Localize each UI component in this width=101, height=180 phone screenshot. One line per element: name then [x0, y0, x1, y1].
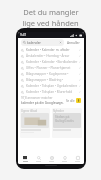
staticText: lige ved hånden	[22, 18, 79, 28]
staticText: kalender på din Googlesøgn.	[21, 101, 64, 105]
button[interactable]: Ugens tilbud	[20, 108, 50, 138]
button[interactable]: Kalender • Kalender m. aftaler	[18, 47, 84, 53]
button[interactable]: Årskalender • Hverdag • Årsur	[18, 53, 84, 59]
button[interactable]: Bilagsmapper • Kuglepenne • Ugekalender	[18, 71, 84, 77]
button[interactable]: 97,8 annoncer matcher	[18, 95, 84, 106]
button[interactable]: Kalender • Tidsplan • Murerhold	[18, 89, 84, 95]
staticText: Kalender • Kalender m. aftaler	[26, 48, 78, 52]
button[interactable]: Søg	[32, 154, 45, 164]
staticText: Bilagsmapper • Bladring • Kvartalshjul	[26, 78, 78, 82]
button[interactable]: Se alle annoncer	[76, 98, 81, 103]
button[interactable]: Profil	[71, 154, 84, 164]
button[interactable]: Kalender • Kalender • Bordkalender	[18, 59, 84, 65]
staticText: Årskalender • Hverdag • Årsur	[26, 54, 78, 58]
staticText: Uffes • Planner • Planerhjørnet	[26, 66, 78, 70]
staticText: Bilagsmapper • Kuglepenne • Ugekalender	[26, 72, 78, 76]
staticText: Kalender • Kalender • Bordkalender	[26, 60, 78, 64]
staticText: Kalender • Tidsplan • Murerhold	[26, 90, 78, 94]
staticText: Nyheder	[53, 109, 64, 113]
staticText: GulogGratis	[55, 119, 74, 123]
button[interactable]: Uffes • Planner • Planerhjørnet	[18, 65, 84, 71]
staticText: 97,8 annoncer matcher	[21, 96, 53, 100]
staticText: Det du mangler	[23, 7, 79, 17]
staticText: Annuller	[67, 41, 80, 45]
staticText: Sådan på	[55, 115, 70, 119]
button[interactable]: Nyheder	[52, 108, 82, 138]
button[interactable]: kalender	[21, 39, 64, 46]
staticText: Kalender • Tidsplan • Ugekalendere	[26, 84, 78, 88]
button[interactable]: Bilagsmapper • Bladring • Kvartalshjul	[18, 77, 84, 83]
button[interactable]: Opret	[45, 154, 58, 164]
button[interactable]: Kalender • Tidsplan • Ugekalendere	[18, 83, 84, 89]
staticText: 9:41	[20, 33, 27, 37]
button[interactable]: Forside	[18, 154, 32, 164]
button[interactable]: Beskeder	[58, 154, 71, 164]
staticText: Ugens tilbud	[21, 109, 38, 113]
staticText: kalender	[27, 40, 41, 45]
button[interactable]: Annuller	[66, 41, 81, 45]
staticText: Se alle	[66, 99, 75, 103]
